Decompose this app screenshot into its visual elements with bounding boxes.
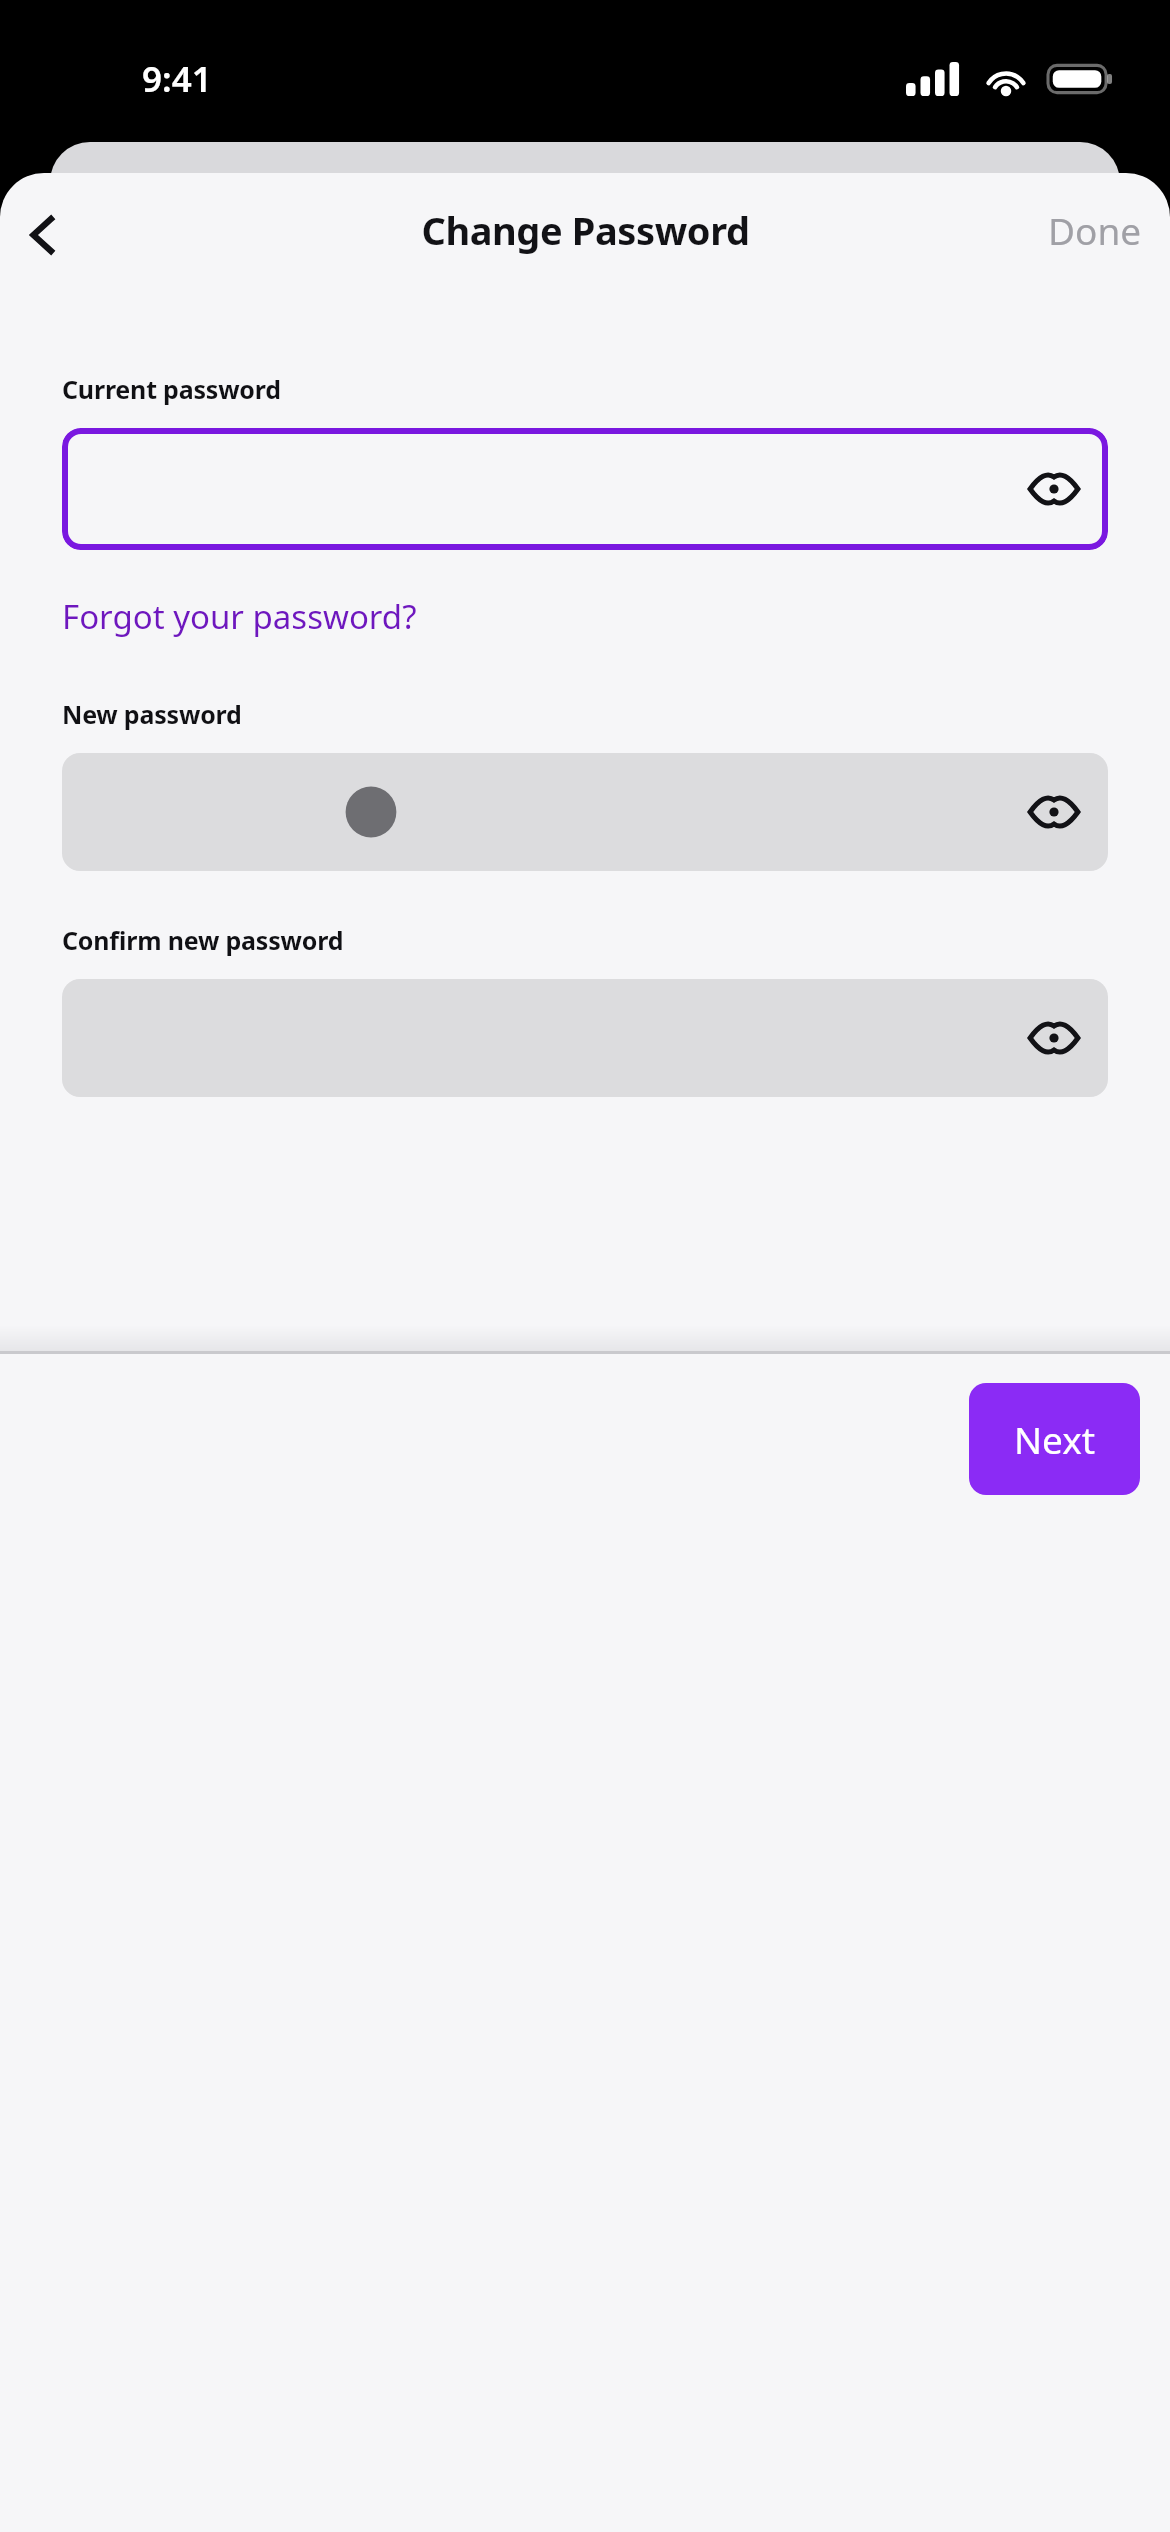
staticText: 9:41	[142, 55, 212, 103]
button[interactable]: Back	[0, 192, 86, 278]
button[interactable]: Show confirm password	[62, 979, 1108, 1097]
button[interactable]: Show password	[62, 428, 1108, 550]
button[interactable]: Show new password	[1010, 768, 1098, 856]
button[interactable]: Forgot your password?	[62, 588, 417, 645]
button[interactable]: Show password	[1010, 445, 1098, 533]
staticText: Next	[1014, 1414, 1096, 1464]
staticText: Forgot your password?	[62, 594, 417, 639]
button[interactable]: Next	[969, 1383, 1140, 1495]
staticText: New password	[62, 697, 242, 731]
staticText: Done	[1048, 205, 1142, 255]
staticText: Change Password	[421, 204, 750, 256]
staticText: Confirm new password	[62, 923, 344, 957]
button[interactable]: Show confirm password	[1010, 994, 1098, 1082]
button[interactable]: Show new password	[62, 753, 1108, 871]
staticText: Current password	[62, 372, 281, 406]
button[interactable]: Done	[1020, 187, 1170, 273]
